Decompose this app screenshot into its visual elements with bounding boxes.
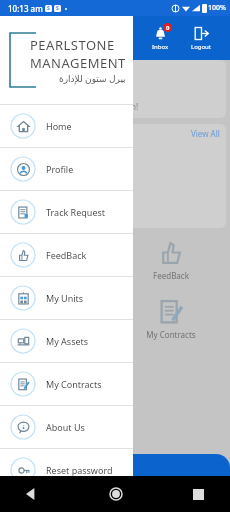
staticText: Reset password bbox=[46, 464, 113, 476]
button[interactable]: My Contracts bbox=[115, 293, 226, 346]
staticText: My Assets bbox=[46, 335, 89, 347]
button[interactable]: FeedBack bbox=[0, 234, 133, 276]
staticText: No Announcements Today! bbox=[12, 209, 114, 220]
staticText: Track Request bbox=[46, 206, 106, 218]
staticText: FeedBack bbox=[153, 270, 189, 281]
button[interactable]: My Assets bbox=[0, 320, 133, 362]
staticText: Logout bbox=[191, 43, 211, 51]
staticText: Track Request bbox=[33, 270, 86, 281]
button[interactable]: Home bbox=[0, 105, 133, 147]
button[interactable]: My Units bbox=[4, 293, 115, 346]
button[interactable]: Expand bbox=[0, 454, 230, 476]
staticText: Profile bbox=[46, 163, 74, 175]
staticText: About Us bbox=[46, 421, 85, 433]
button[interactable]: FeedBack bbox=[115, 234, 226, 287]
staticText: Home bbox=[46, 120, 72, 132]
staticText: 10:13 am bbox=[8, 3, 43, 14]
button[interactable]: My Units bbox=[0, 277, 133, 319]
button[interactable]: Back bbox=[26, 488, 38, 500]
button[interactable]: Home bbox=[109, 487, 123, 501]
staticText: My Units bbox=[46, 292, 84, 304]
button[interactable]: View All bbox=[191, 128, 220, 139]
staticText: PEARLSTONE bbox=[30, 36, 115, 54]
staticText: FeedBack bbox=[46, 249, 87, 261]
button[interactable]: Logout bbox=[187, 24, 215, 53]
button[interactable]: My Contracts bbox=[0, 363, 133, 405]
staticText: My Units bbox=[43, 329, 76, 340]
button[interactable]: Inbox bbox=[148, 24, 173, 53]
staticText: My Contracts bbox=[146, 329, 196, 340]
staticText: بيرل ستون للإدارة bbox=[59, 72, 126, 84]
staticText: Welcome Back, you are logged in! bbox=[12, 101, 139, 112]
staticText: MANAGEMENT bbox=[30, 54, 126, 72]
staticText: Inbox bbox=[152, 43, 169, 51]
staticText: My Contracts bbox=[46, 378, 102, 390]
button[interactable]: Reset password bbox=[0, 449, 133, 491]
button[interactable]: Track Request bbox=[0, 191, 133, 233]
staticText: S bbox=[56, 5, 59, 12]
staticText: S bbox=[47, 5, 50, 12]
button[interactable]: Profile bbox=[0, 148, 133, 190]
staticText: 100% bbox=[208, 3, 226, 13]
staticText: 0 bbox=[166, 24, 170, 32]
button[interactable]: About Us bbox=[0, 406, 133, 448]
button[interactable]: Track Request bbox=[4, 234, 115, 287]
